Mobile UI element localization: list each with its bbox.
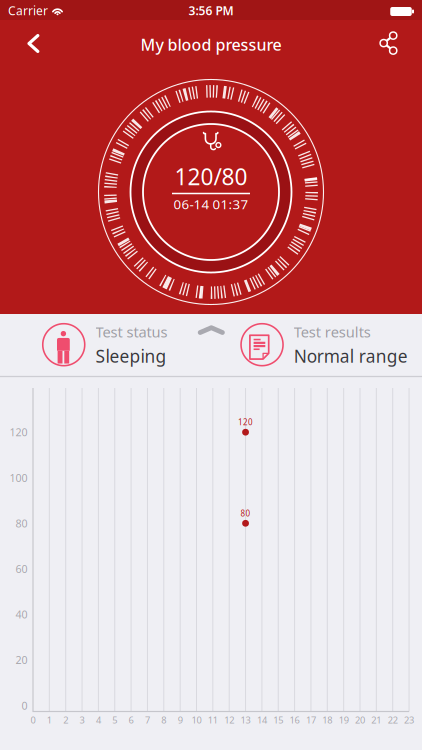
staticText: 21: [371, 714, 381, 726]
button[interactable]: Test results: [240, 317, 408, 373]
staticText: Test results: [294, 322, 371, 341]
staticText: 40: [15, 607, 27, 621]
staticText: 0: [21, 698, 27, 713]
staticText: 0: [30, 714, 35, 726]
staticText: 18: [322, 714, 332, 726]
staticText: 14: [257, 714, 267, 726]
staticText: 80: [15, 516, 27, 530]
staticText: 60: [15, 562, 27, 576]
staticText: Normal range: [294, 344, 408, 367]
staticText: 16: [290, 714, 300, 726]
staticText: 6: [129, 714, 134, 726]
staticText: 9: [178, 714, 183, 726]
staticText: 23: [404, 714, 414, 726]
staticText: 2: [63, 714, 68, 726]
button[interactable]: Test status: [42, 317, 186, 373]
staticText: 20: [15, 653, 27, 667]
staticText: 80: [241, 508, 251, 519]
staticText: Test status: [95, 322, 167, 341]
staticText: 5: [112, 714, 117, 726]
staticText: 13: [241, 714, 251, 726]
staticText: 1: [47, 714, 52, 726]
button[interactable]: Collapse: [198, 324, 225, 337]
staticText: 120/80: [174, 161, 247, 191]
staticText: My blood pressure: [140, 34, 281, 55]
staticText: 12: [224, 714, 234, 726]
staticText: 19: [339, 714, 349, 726]
staticText: 22: [388, 714, 398, 726]
staticText: 3: [80, 714, 85, 726]
staticText: 15: [273, 714, 283, 726]
staticText: 20: [355, 714, 365, 726]
button[interactable]: Share: [366, 21, 410, 65]
staticText: Carrier: [8, 2, 48, 18]
staticText: 17: [306, 714, 316, 726]
staticText: 10: [191, 714, 201, 726]
staticText: 3:56 PM: [188, 2, 233, 18]
staticText: Sleeping: [95, 344, 166, 367]
staticText: 120: [9, 425, 27, 439]
button[interactable]: Back: [11, 21, 55, 65]
staticText: 06-14 01:37: [173, 195, 248, 213]
staticText: 11: [208, 714, 218, 726]
staticText: 100: [9, 471, 27, 485]
staticText: 8: [161, 714, 166, 726]
staticText: 4: [96, 714, 101, 726]
staticText: 120: [238, 417, 253, 427]
staticText: 7: [145, 714, 150, 726]
